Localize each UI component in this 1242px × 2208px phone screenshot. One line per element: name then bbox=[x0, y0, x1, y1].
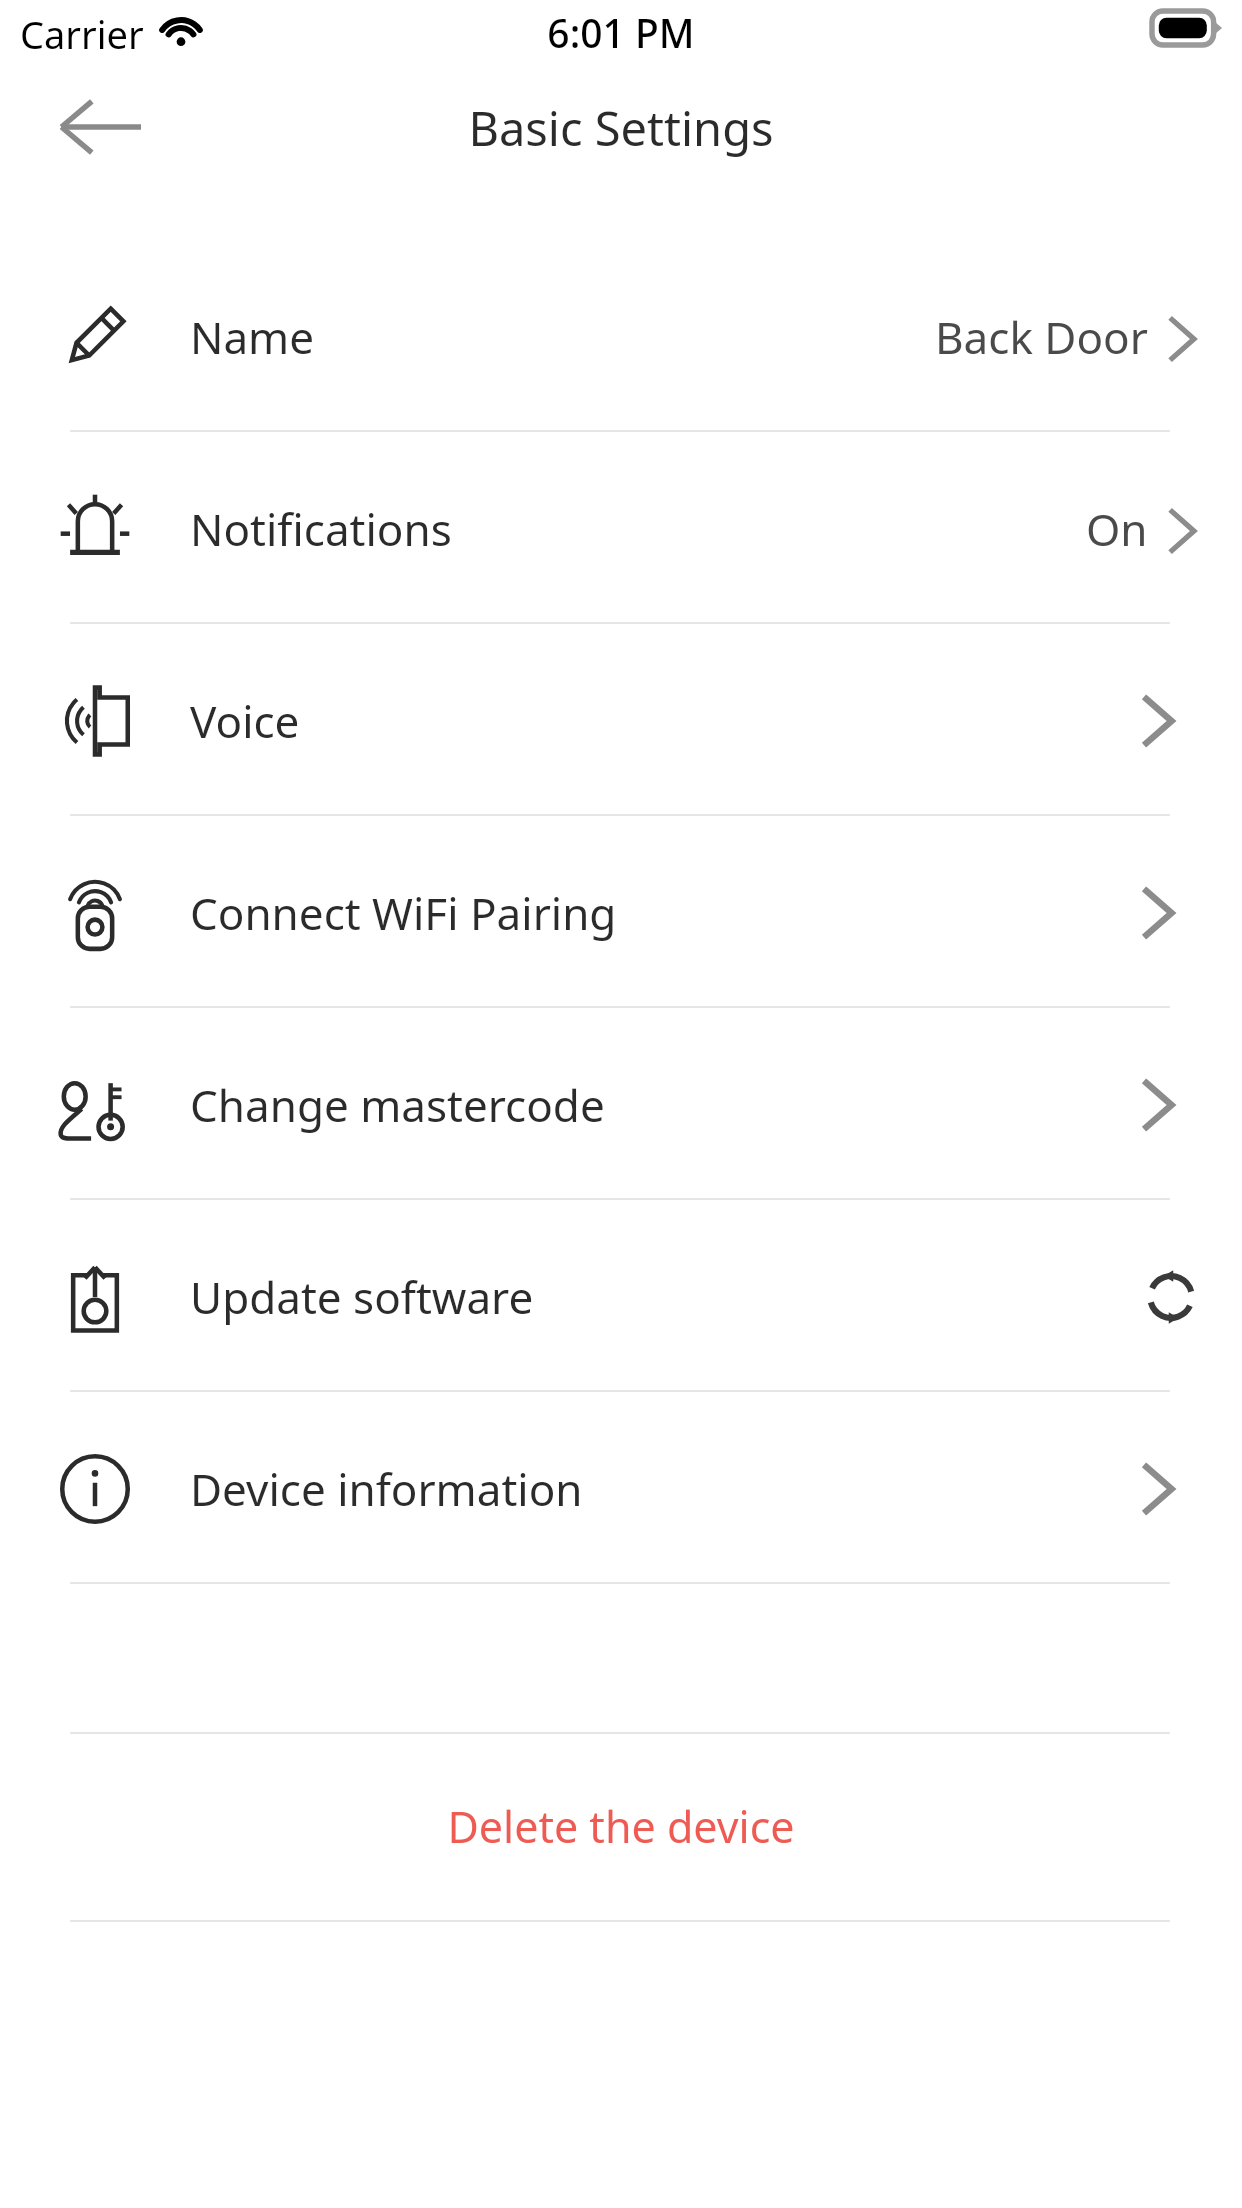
staticText: Name bbox=[190, 307, 315, 367]
button[interactable]: Update software bbox=[0, 1201, 1242, 1393]
button[interactable]: Back bbox=[40, 82, 160, 172]
staticText: Basic Settings bbox=[468, 96, 774, 160]
staticText: Device information bbox=[190, 1459, 583, 1519]
button[interactable]: Notifications bbox=[0, 433, 1242, 625]
button[interactable]: Device information bbox=[0, 1393, 1242, 1585]
staticText: Delete the device bbox=[447, 1797, 795, 1856]
staticText: Update software bbox=[190, 1267, 534, 1327]
staticText: Notifications bbox=[190, 499, 452, 559]
button[interactable]: Name bbox=[0, 241, 1242, 433]
button[interactable]: Connect WiFi Pairing bbox=[0, 817, 1242, 1009]
button[interactable]: Delete the device bbox=[0, 1732, 1242, 1920]
staticText: Carrier bbox=[20, 8, 144, 60]
button[interactable]: Voice bbox=[0, 625, 1242, 817]
staticText: Connect WiFi Pairing bbox=[190, 883, 617, 943]
staticText: 6:01 PM bbox=[0, 6, 1242, 59]
staticText: Change mastercode bbox=[190, 1075, 605, 1135]
button[interactable]: Change mastercode bbox=[0, 1009, 1242, 1201]
staticText: Voice bbox=[190, 691, 300, 751]
staticText: On bbox=[1086, 499, 1148, 559]
staticText: Back Door bbox=[935, 307, 1148, 367]
